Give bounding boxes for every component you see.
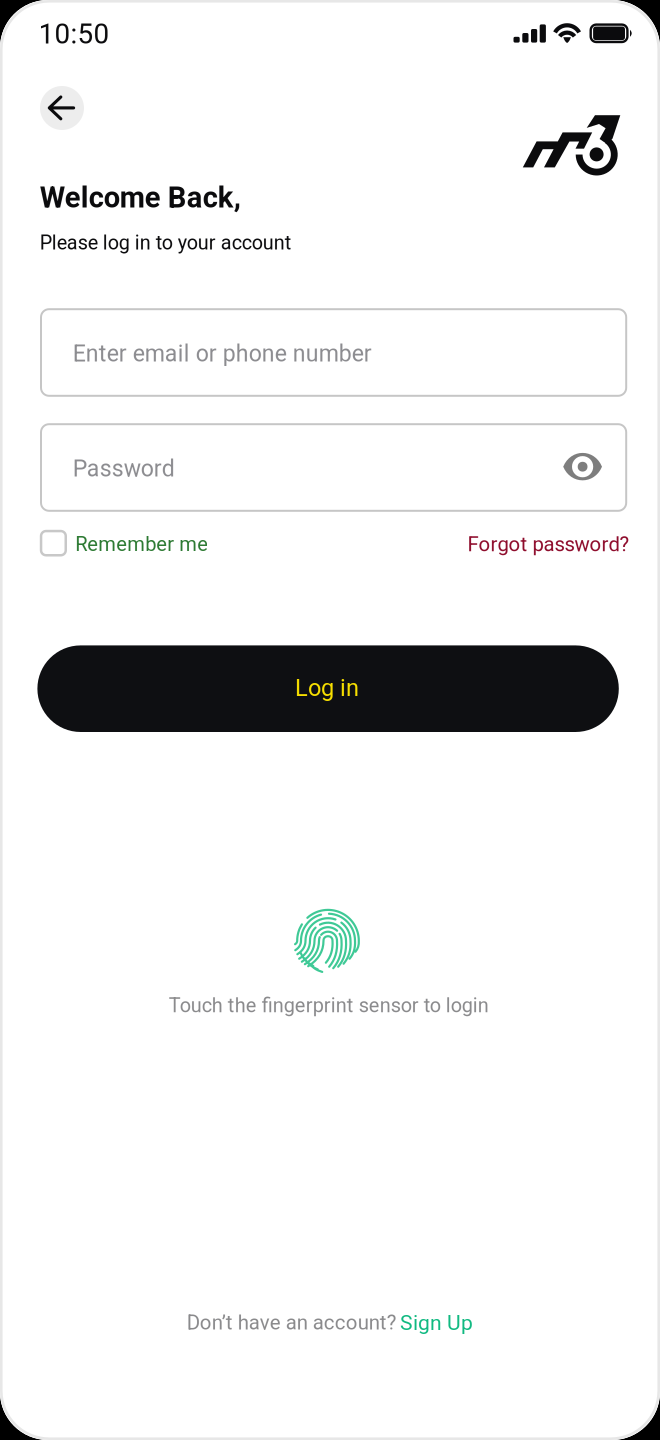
button[interactable]: Password [41, 424, 626, 511]
button[interactable]: Sign Up [400, 1310, 472, 1336]
staticText: Welcome Back, [40, 180, 241, 215]
staticText: Enter email or phone number [73, 340, 372, 367]
staticText: Don’t have an account? [187, 1310, 397, 1334]
button[interactable]: Forgot password? [468, 532, 628, 558]
staticText: 10:50 [38, 18, 109, 50]
staticText: Forgot password? [468, 532, 630, 556]
button[interactable]: Remember me [40, 530, 207, 556]
button[interactable]: Log in [37, 645, 619, 732]
button[interactable]: Back [40, 86, 84, 130]
button[interactable]: Touch the fingerprint sensor to login [295, 909, 361, 975]
staticText: Sign Up [400, 1310, 473, 1335]
staticText: Password [73, 455, 175, 482]
staticText: Remember me [75, 532, 208, 556]
staticText: Please log in to your account [40, 231, 291, 254]
staticText: Log in [295, 674, 359, 702]
button[interactable]: Show password [559, 443, 607, 491]
button[interactable]: Enter email or phone number [41, 309, 626, 396]
staticText: Touch the fingerprint sensor to login [169, 994, 489, 1017]
